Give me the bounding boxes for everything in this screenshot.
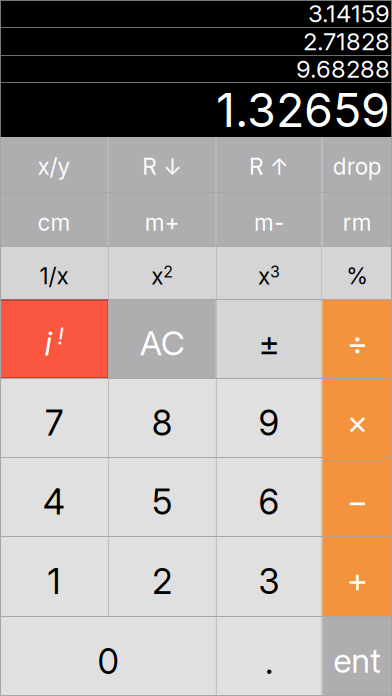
button[interactable]: 9 bbox=[217, 379, 321, 457]
button[interactable]: 3 bbox=[217, 537, 321, 616]
button[interactable]: x3 bbox=[217, 247, 321, 299]
button[interactable]: + bbox=[322, 537, 392, 616]
button[interactable]: 1/x bbox=[0, 247, 108, 299]
button[interactable]: AC bbox=[109, 300, 216, 378]
staticText: cm bbox=[37, 209, 70, 236]
staticText: 4 bbox=[43, 481, 65, 523]
staticText: rm bbox=[343, 209, 372, 236]
button[interactable]: x/y bbox=[0, 137, 108, 192]
staticText: ÷ bbox=[347, 323, 368, 363]
staticText: x3 bbox=[258, 262, 280, 290]
button[interactable]: . bbox=[217, 617, 321, 696]
button[interactable]: x2 bbox=[109, 247, 216, 299]
button[interactable]: R ↓ bbox=[109, 137, 216, 192]
button[interactable]: ± bbox=[217, 300, 321, 378]
button[interactable]: cm bbox=[0, 193, 108, 246]
staticText: drop bbox=[333, 153, 382, 180]
staticText: 9.68288 bbox=[296, 54, 390, 83]
button[interactable]: ÷ bbox=[322, 300, 392, 378]
staticText: × bbox=[347, 402, 368, 442]
staticText: 3.14159 bbox=[308, 0, 390, 28]
staticText: x2 bbox=[151, 262, 173, 290]
staticText: . bbox=[265, 640, 273, 682]
staticText: 9 bbox=[259, 402, 280, 444]
staticText: R ↑ bbox=[249, 153, 289, 180]
button[interactable]: × bbox=[322, 379, 392, 457]
button[interactable]: − bbox=[322, 458, 392, 536]
button[interactable]: 1 bbox=[0, 537, 108, 616]
staticText: 0 bbox=[97, 640, 118, 682]
staticText: x/y bbox=[37, 153, 70, 180]
button[interactable]: 8 bbox=[109, 379, 216, 457]
button[interactable]: 2 bbox=[109, 537, 216, 616]
button[interactable]: 4 bbox=[0, 458, 108, 536]
staticText: ent bbox=[333, 640, 381, 681]
button[interactable]: rm bbox=[322, 193, 392, 246]
staticText: 1.32659 bbox=[216, 82, 390, 138]
staticText: 7 bbox=[45, 402, 63, 444]
button[interactable]: R ↑ bbox=[217, 137, 321, 192]
button[interactable]: 7 bbox=[0, 379, 108, 457]
staticText: ± bbox=[259, 323, 280, 363]
staticText: m- bbox=[254, 209, 284, 236]
button[interactable]: m+ bbox=[109, 193, 216, 246]
button[interactable]: drop bbox=[322, 137, 392, 192]
staticText: 6 bbox=[259, 481, 280, 523]
button[interactable]: 5 bbox=[109, 458, 216, 536]
button[interactable]: 6 bbox=[217, 458, 321, 536]
staticText: 3 bbox=[259, 560, 280, 602]
button[interactable]: ent bbox=[322, 617, 392, 696]
staticText: AC bbox=[140, 323, 185, 363]
button[interactable]: % bbox=[322, 247, 392, 299]
button[interactable]: i ! bbox=[0, 300, 108, 378]
staticText: − bbox=[347, 481, 368, 521]
staticText: 2.71828 bbox=[303, 27, 390, 56]
staticText: 1/x bbox=[39, 262, 68, 290]
button[interactable]: 0 bbox=[0, 617, 216, 696]
staticText: % bbox=[346, 262, 368, 290]
staticText: R ↓ bbox=[142, 153, 182, 180]
staticText: + bbox=[347, 560, 368, 601]
staticText: 1 bbox=[47, 560, 60, 602]
staticText: i ! bbox=[44, 323, 63, 363]
staticText: 8 bbox=[152, 402, 173, 444]
staticText: m+ bbox=[145, 209, 180, 236]
staticText: 2 bbox=[152, 560, 172, 602]
staticText: 5 bbox=[152, 481, 172, 523]
button[interactable]: m- bbox=[217, 193, 321, 246]
